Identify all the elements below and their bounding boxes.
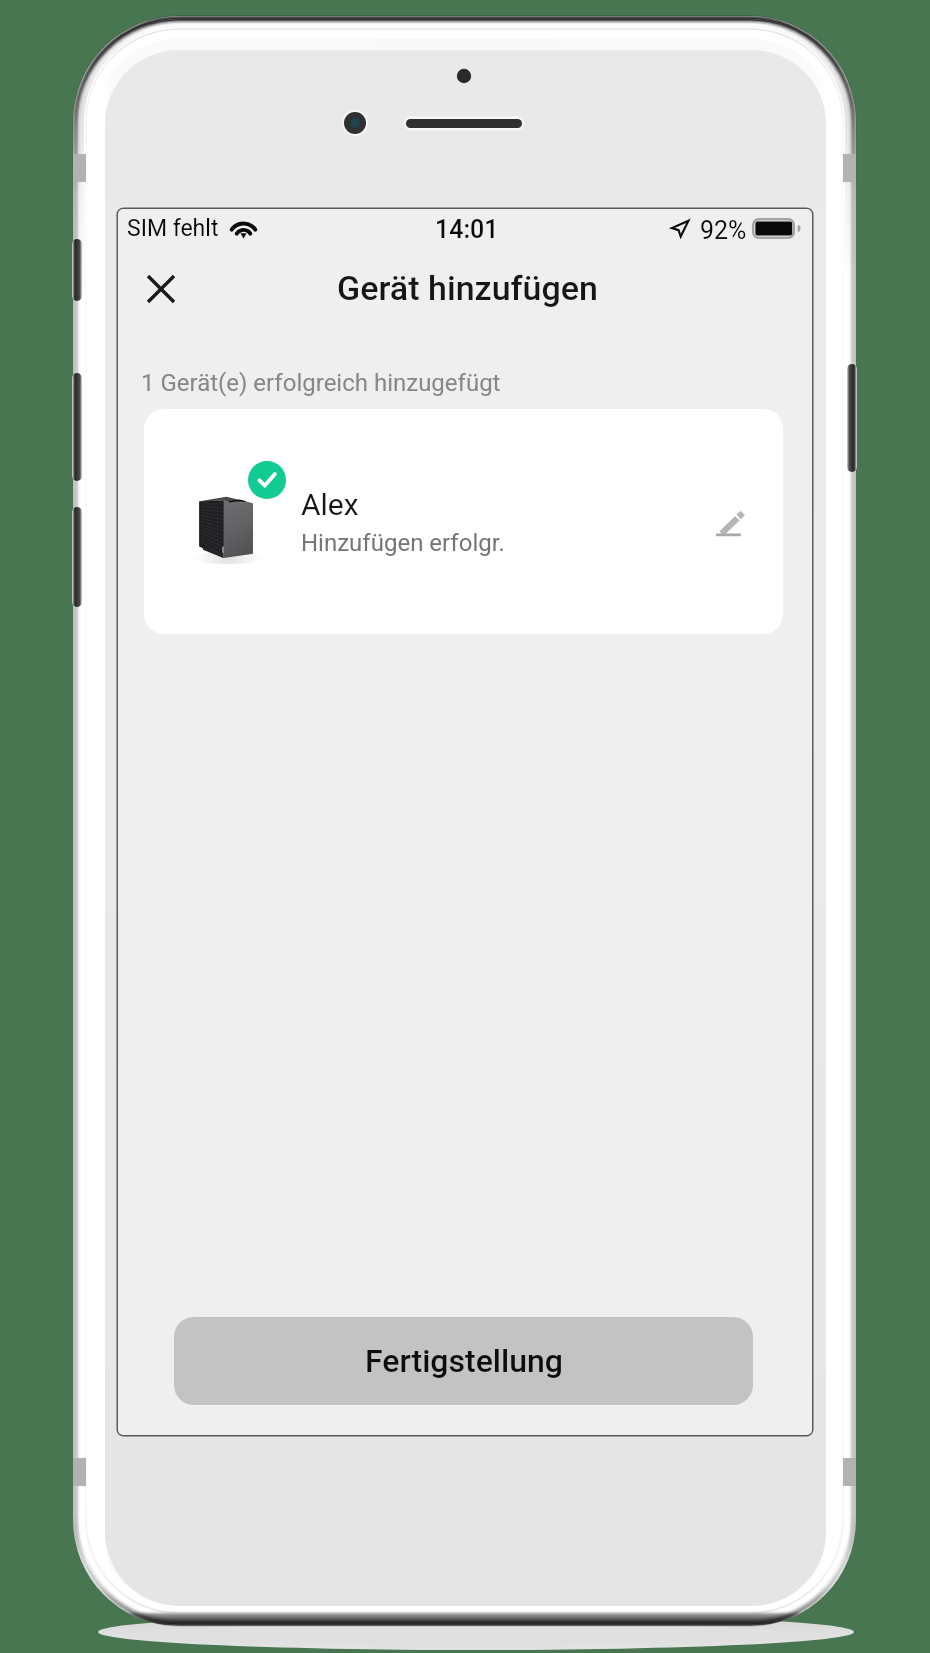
- button[interactable]: Alex: [144, 409, 783, 634]
- staticText: Alex: [301, 487, 359, 522]
- staticText: SIM fehlt: [127, 215, 219, 242]
- button[interactable]: Schließen: [131, 259, 191, 319]
- staticText: 92%: [700, 216, 747, 245]
- staticText: 1 Gerät(e) erfolgreich hinzugefügt: [141, 369, 501, 397]
- staticText: Gerät hinzufügen: [337, 268, 598, 308]
- staticText: Fertigstellung: [365, 1342, 563, 1380]
- staticText: Hinzufügen erfolgr.: [301, 529, 505, 557]
- button[interactable]: Fertigstellung: [174, 1317, 753, 1405]
- button[interactable]: Umbenennen: [698, 490, 762, 554]
- staticText: 14:01: [435, 215, 499, 244]
